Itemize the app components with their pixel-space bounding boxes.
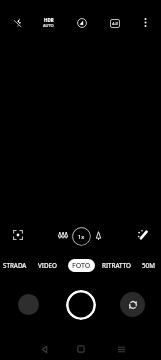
button[interactable]: STRADA — [1, 257, 29, 274]
button[interactable]: Gallery — [18, 294, 39, 315]
staticText: VIDEO — [38, 261, 57, 270]
staticText: HDR — [44, 17, 54, 23]
button[interactable]: More settings — [134, 11, 156, 33]
button[interactable]: FOTO — [68, 259, 95, 272]
button[interactable]: Beauty — [89, 226, 108, 245]
button[interactable]: Aspect ratio — [104, 12, 126, 34]
staticText: FOTO — [72, 261, 91, 271]
button[interactable]: Recent apps — [112, 340, 130, 358]
button[interactable]: Night mode — [71, 12, 93, 34]
button[interactable]: Magic — [133, 225, 153, 245]
button[interactable]: Back — [35, 340, 53, 358]
staticText: STRADA — [3, 261, 27, 270]
button[interactable]: HDR — [37, 11, 59, 33]
button[interactable]: Filters — [53, 224, 73, 244]
button[interactable]: 50M — [140, 257, 157, 274]
staticText: 4:3 — [112, 21, 118, 27]
button[interactable]: RITRATTO — [100, 257, 133, 274]
staticText: 50M — [142, 261, 155, 270]
button[interactable]: Flash off — [7, 11, 29, 33]
button[interactable]: Home — [72, 340, 90, 358]
button[interactable]: 1x — [71, 226, 91, 246]
staticText: 1x — [78, 233, 85, 240]
button[interactable]: Scan — [8, 225, 28, 245]
staticText: RITRATTO — [102, 261, 131, 270]
button[interactable]: Switch camera — [120, 292, 145, 317]
button[interactable]: Take photo — [66, 290, 96, 320]
staticText: AUTO — [43, 23, 54, 28]
button[interactable]: VIDEO — [36, 257, 59, 274]
